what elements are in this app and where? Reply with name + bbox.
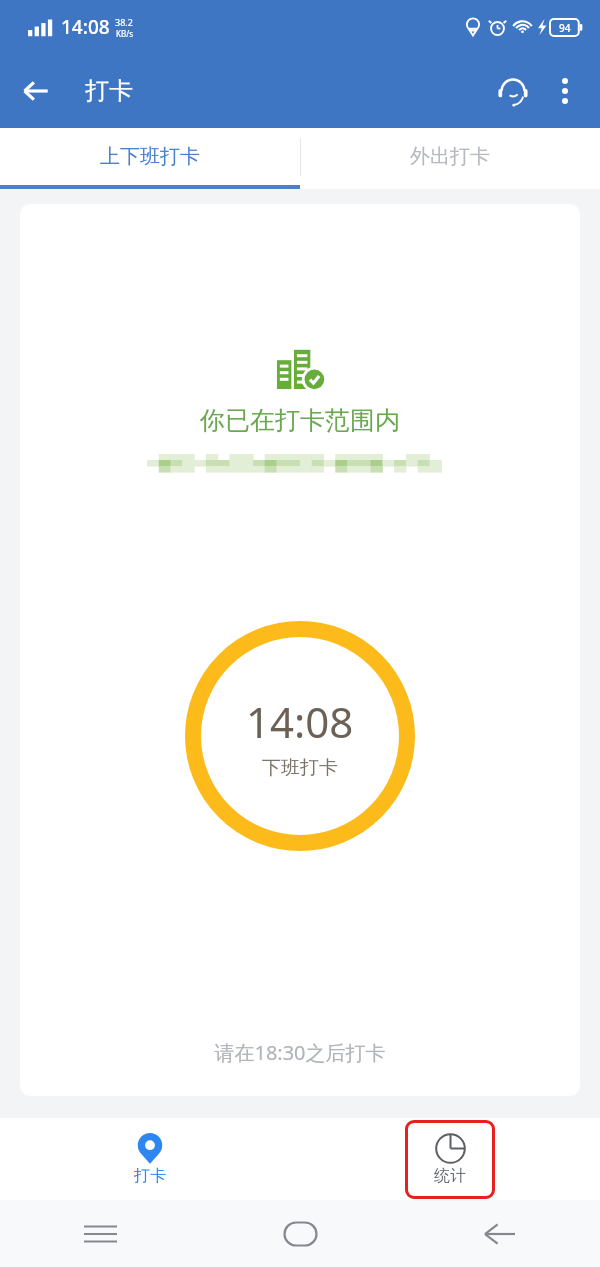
staticText: 上下班打卡: [100, 144, 200, 169]
button[interactable]: Home: [200, 1200, 400, 1267]
staticText: KB/s: [116, 28, 133, 39]
staticText: 38.2: [115, 16, 133, 28]
button[interactable]: 上下班打卡: [0, 128, 300, 185]
staticText: 统计: [434, 1166, 466, 1186]
button[interactable]: 统计: [405, 1120, 495, 1199]
staticText: 下班打卡: [262, 756, 338, 780]
button[interactable]: 外出打卡: [300, 128, 600, 185]
staticText: 94: [559, 21, 571, 35]
button[interactable]: Customer service: [486, 64, 540, 118]
button[interactable]: More options: [540, 66, 590, 116]
staticText: 14:08: [61, 14, 110, 40]
button[interactable]: Clock out: [185, 621, 415, 851]
button[interactable]: Back: [400, 1200, 600, 1267]
staticText: 你已在打卡范围内: [200, 405, 400, 436]
staticText: 打卡: [85, 76, 133, 106]
button[interactable]: Back: [8, 63, 64, 119]
staticText: 请在18:30之后打卡: [214, 1039, 386, 1066]
staticText: 14:08: [246, 693, 354, 750]
staticText: 打卡: [134, 1166, 166, 1186]
button[interactable]: Recent apps: [0, 1200, 200, 1267]
button[interactable]: 打卡: [0, 1118, 300, 1200]
staticText: 外出打卡: [410, 144, 490, 169]
